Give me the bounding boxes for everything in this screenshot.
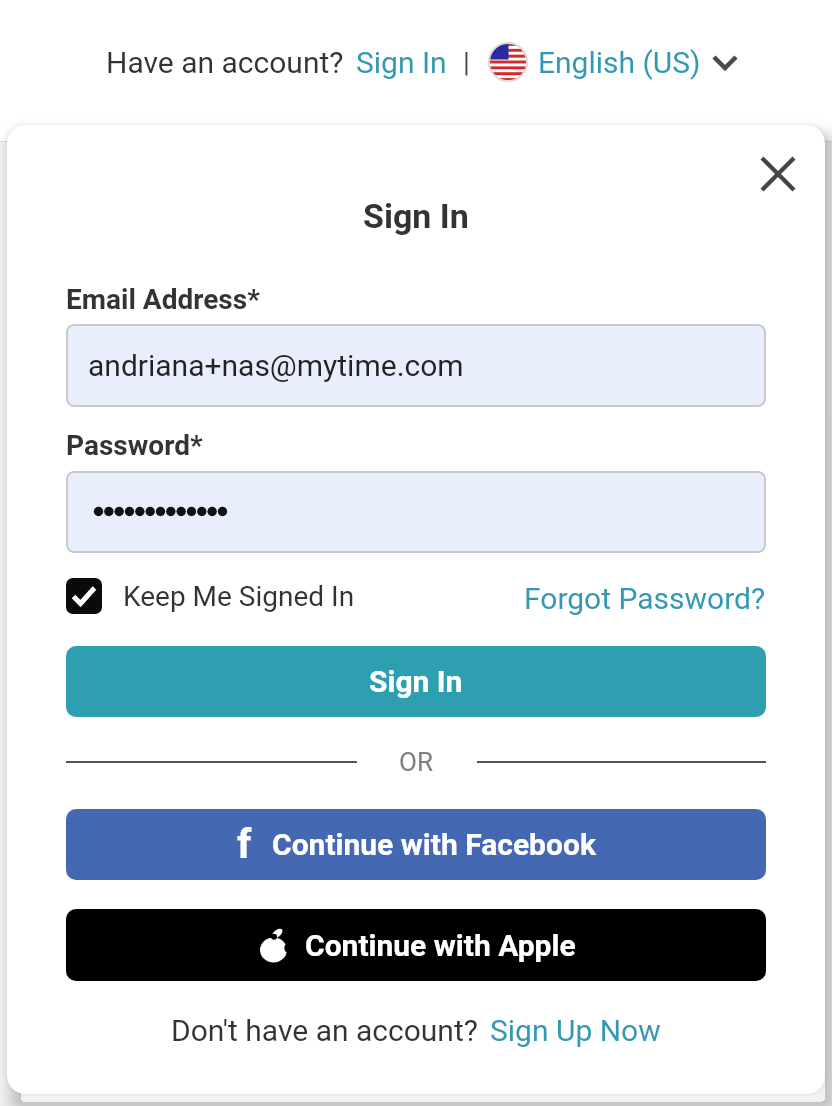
button[interactable]	[753, 149, 803, 199]
staticText: Continue with Facebook	[272, 827, 596, 862]
staticText: Email Address*	[66, 283, 260, 316]
staticText: Have an account?	[106, 45, 344, 80]
button[interactable]: f	[66, 809, 766, 880]
staticText: Sign In	[363, 196, 469, 236]
staticText: English (US)	[538, 45, 701, 80]
staticText: Keep Me Signed In	[123, 580, 355, 613]
staticText: |	[463, 46, 470, 79]
button[interactable]: Keep Me Signed In	[66, 578, 355, 614]
staticText: OR	[399, 747, 433, 777]
staticText: Password*	[66, 429, 203, 462]
button[interactable]: Forgot Password?	[524, 581, 766, 616]
staticText: Forgot Password?	[524, 581, 766, 616]
staticText: andriana+nas@mytime.com	[88, 348, 464, 383]
staticText: Sign Up Now	[490, 1013, 661, 1048]
button[interactable]: Continue with Apple	[66, 909, 766, 981]
button[interactable]: andriana+nas@mytime.com	[66, 324, 766, 407]
button[interactable]: English (US)	[488, 42, 739, 82]
button[interactable]: Sign Up Now	[490, 1013, 661, 1048]
button[interactable]	[66, 471, 766, 553]
button[interactable]: Sign In	[356, 45, 447, 80]
button[interactable]: Sign In	[66, 646, 766, 717]
staticText: Sign In	[356, 45, 447, 80]
staticText: Continue with Apple	[305, 928, 576, 963]
staticText: Sign In	[369, 664, 463, 699]
staticText: Don't have an account?	[171, 1013, 478, 1048]
staticText: f	[237, 821, 252, 868]
